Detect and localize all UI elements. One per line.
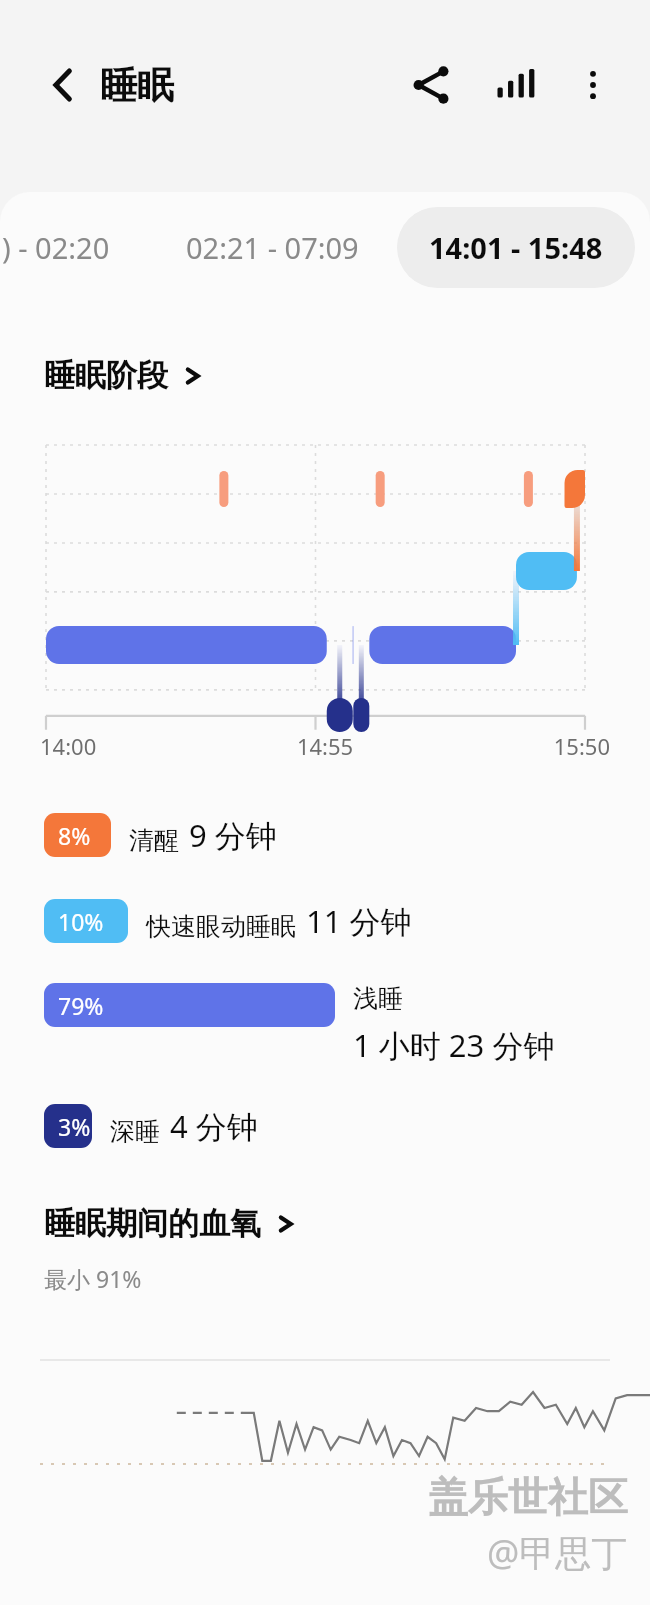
staticText: @甲思丁	[487, 1528, 628, 1577]
staticText: 清醒	[129, 825, 179, 856]
staticText: 深睡	[110, 1116, 160, 1147]
button[interactable]: Back	[34, 59, 86, 111]
button[interactable]: 8%	[0, 813, 650, 857]
staticText: 4 分钟	[170, 1105, 258, 1147]
staticText: 最小 91%	[44, 1263, 142, 1294]
staticText: 3%	[58, 1111, 91, 1142]
staticText: 15:50	[420, 731, 610, 761]
button[interactable]: 02:21 - 07:09	[186, 228, 359, 267]
button[interactable]: 3%	[0, 1104, 650, 1148]
button[interactable]: 睡眠期间的血氧	[0, 1204, 650, 1243]
button[interactable]: 79%	[0, 983, 650, 1066]
button[interactable]: 14:01 - 15:48	[397, 207, 635, 288]
button[interactable]: Statistics	[484, 54, 546, 116]
staticText: 14:01 - 15:48	[429, 228, 603, 267]
staticText: 9 分钟	[189, 814, 277, 856]
staticText: 盖乐世社区	[428, 1472, 628, 1522]
staticText: 睡眠	[100, 62, 174, 109]
staticText: 14:00	[40, 731, 230, 761]
staticText: 浅睡	[353, 983, 403, 1014]
button[interactable]: 10%	[0, 899, 650, 943]
staticText: 1 小时 23 分钟	[353, 1024, 555, 1066]
staticText: 快速眼动睡眠	[146, 911, 296, 942]
staticText: 睡眠期间的血氧	[44, 1204, 261, 1243]
staticText: 睡眠阶段	[44, 356, 168, 395]
staticText: 8%	[58, 820, 91, 851]
staticText: 10%	[58, 906, 104, 937]
button[interactable]: Share	[400, 54, 462, 116]
button[interactable]: More options	[562, 54, 624, 116]
button[interactable]: ) - 02:20	[2, 228, 110, 267]
button[interactable]: 睡眠阶段	[0, 302, 650, 395]
staticText: 14:55	[230, 731, 420, 761]
staticText: 11 分钟	[306, 900, 412, 942]
staticText: 79%	[58, 990, 104, 1021]
